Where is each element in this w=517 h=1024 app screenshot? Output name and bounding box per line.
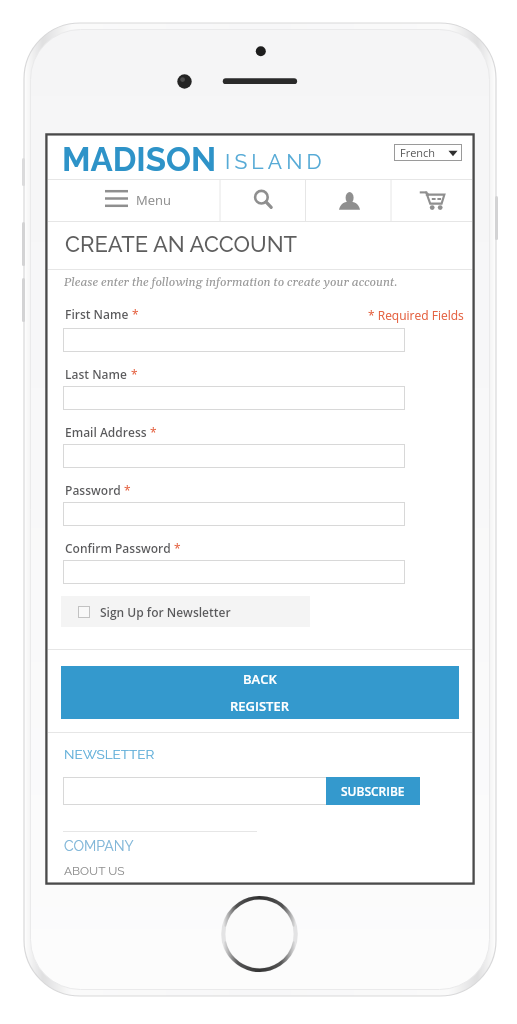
staticText: ISLAND	[225, 149, 326, 174]
staticText: SUBSCRIBE	[341, 783, 405, 799]
button[interactable]: Menu	[48, 179, 220, 222]
staticText: Confirm Password	[65, 540, 174, 556]
button[interactable]	[63, 328, 405, 352]
button[interactable]	[63, 502, 405, 526]
staticText: MADISON	[62, 140, 217, 179]
staticText: REGISTER	[230, 697, 290, 715]
staticText: Password	[65, 482, 124, 498]
button[interactable]: Search	[220, 179, 306, 222]
button[interactable]: French	[394, 144, 462, 161]
staticText: Email Address	[65, 424, 150, 440]
staticText: *	[131, 366, 138, 382]
staticText: French	[400, 145, 436, 160]
staticText: *	[174, 540, 181, 556]
button[interactable]: My Account	[306, 179, 392, 222]
staticText: NEWSLETTER	[64, 746, 155, 762]
staticText: BACK	[243, 670, 277, 688]
staticText: First Name	[65, 306, 132, 322]
staticText: * Required Fields	[368, 307, 464, 323]
staticText: *	[132, 306, 139, 322]
staticText: *	[124, 482, 131, 498]
button[interactable]	[63, 560, 405, 584]
staticText: Last Name	[65, 366, 131, 382]
button[interactable]: MADISON	[62, 140, 318, 179]
button[interactable]: Sign Up for Newsletter	[61, 596, 310, 627]
button[interactable]: REGISTER	[61, 692, 459, 719]
button[interactable]	[63, 444, 405, 468]
button[interactable]: Shopping Cart	[392, 179, 472, 222]
staticText: *	[150, 424, 157, 440]
button[interactable]: SUBSCRIBE	[326, 777, 420, 805]
staticText: Please enter the following information t…	[64, 275, 398, 290]
button[interactable]	[63, 777, 327, 805]
staticText: Menu	[136, 191, 171, 209]
button[interactable]	[63, 386, 405, 410]
button[interactable]: BACK	[61, 666, 459, 692]
staticText: COMPANY	[64, 838, 134, 854]
staticText: CREATE AN ACCOUNT	[65, 231, 298, 257]
button[interactable]: ABOUT US	[64, 864, 125, 878]
staticText: Sign Up for Newsletter	[100, 604, 231, 620]
